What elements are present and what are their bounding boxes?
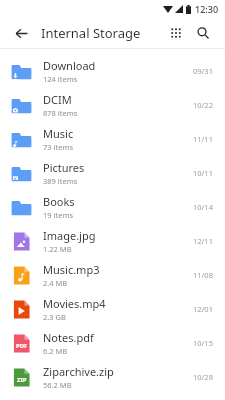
staticText: Image.jpg [43,228,96,243]
button[interactable]: Music.mp3 [0,258,225,292]
staticText: 10/22 [193,100,213,110]
staticText: Internal Storage [41,24,141,42]
button[interactable]: Books [0,190,225,224]
staticText: 10/15 [193,338,213,348]
staticText: 389 items [43,176,78,186]
button[interactable]: DCIM [0,88,225,122]
staticText: 6.2 MB [43,346,68,356]
staticText: 56.2 MB [43,380,72,390]
button[interactable]: Back [10,22,32,44]
staticText: 11/11 [193,134,213,144]
button[interactable]: Music [0,122,225,156]
staticText: Movies.mp4 [43,296,106,311]
button[interactable]: Movies.mp4 [0,292,225,326]
staticText: 878 items [43,108,78,118]
button[interactable]: Pictures [0,156,225,190]
staticText: 12/01 [193,304,213,314]
staticText: Notes.pdf [43,330,94,345]
staticText: Ziparchive.zip [43,364,114,379]
button[interactable]: Download [0,54,225,88]
staticText: 19 items [43,210,74,220]
staticText: DCIM [43,92,72,107]
staticText: Music.mp3 [43,262,100,277]
staticText: PDF [16,342,28,350]
staticText: Books [43,194,75,209]
staticText: 12/11 [193,236,213,246]
staticText: 124 items [43,74,78,84]
button[interactable]: ZIP [0,360,225,394]
staticText: ZIP [17,376,27,384]
button[interactable]: Image.jpg [0,224,225,258]
staticText: 10/11 [193,168,213,178]
staticText: 12:30 [195,3,219,15]
button[interactable]: Search [191,21,215,45]
staticText: 10/28 [193,372,213,382]
staticText: Music [43,126,74,141]
staticText: 09/31 [193,66,213,76]
staticText: 2.4 MB [43,278,68,288]
staticText: 2.3 GB [43,312,66,322]
staticText: Pictures [43,160,85,175]
button[interactable]: Apps [164,21,188,45]
staticText: 73 items [43,142,74,152]
staticText: 10/14 [193,202,213,212]
staticText: Download [43,58,96,73]
staticText: 1.22 MB [43,244,72,254]
staticText: 11/08 [193,270,213,280]
button[interactable]: PDF [0,326,225,360]
